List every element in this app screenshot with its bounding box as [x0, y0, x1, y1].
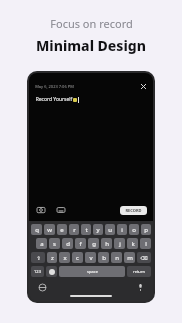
button[interactable]: a	[36, 238, 47, 249]
button[interactable]: t	[81, 224, 91, 235]
button[interactable]: x	[59, 252, 70, 263]
button[interactable]: s	[49, 238, 60, 249]
staticText: v	[89, 254, 93, 262]
button[interactable]: space	[59, 266, 125, 277]
button[interactable]: k	[127, 238, 138, 249]
staticText: r	[73, 226, 76, 234]
button[interactable]: 123	[31, 266, 44, 277]
button[interactable]: RECORD	[120, 206, 147, 215]
button[interactable]: z	[47, 252, 57, 263]
staticText: g	[92, 240, 96, 248]
staticText: h	[105, 240, 109, 248]
button[interactable]: n	[111, 252, 122, 263]
staticText: d	[66, 240, 70, 248]
staticText: u	[108, 226, 112, 234]
button[interactable]: Close	[139, 82, 147, 90]
button[interactable]: Attach media	[55, 204, 67, 216]
button[interactable]: p	[141, 224, 151, 235]
button[interactable]: j	[114, 238, 125, 249]
staticText: q	[35, 226, 39, 234]
button[interactable]: c	[72, 252, 83, 263]
button[interactable]: o	[129, 224, 139, 235]
staticText: x	[63, 254, 67, 262]
button[interactable]: q	[31, 224, 42, 235]
button[interactable]: f	[75, 238, 86, 249]
staticText: f	[79, 240, 82, 248]
staticText: c	[76, 254, 79, 262]
staticText: t	[85, 226, 88, 234]
button[interactable]: u	[105, 224, 115, 235]
staticText: m	[127, 254, 133, 262]
button[interactable]: l	[140, 238, 151, 249]
staticText: return	[133, 269, 145, 274]
staticText: e	[60, 226, 64, 234]
staticText: b	[102, 254, 106, 262]
staticText: Minimal Design	[36, 36, 146, 55]
button[interactable]: e	[57, 224, 67, 235]
button[interactable]: m	[124, 252, 135, 263]
button[interactable]: d	[62, 238, 73, 249]
staticText: Focus on record	[50, 16, 133, 31]
button[interactable]: Dictation	[135, 282, 145, 292]
staticText: y	[96, 226, 100, 234]
button[interactable]: Emoji	[46, 266, 57, 277]
staticText: i	[121, 226, 123, 234]
button[interactable]: h	[101, 238, 112, 249]
staticText: a	[40, 240, 44, 248]
staticText: n	[115, 254, 119, 262]
staticText: ⇧	[36, 255, 41, 261]
staticText: k	[131, 240, 135, 248]
staticText: RECORD	[125, 208, 142, 213]
button[interactable]: r	[69, 224, 79, 235]
button[interactable]: v	[85, 252, 96, 263]
staticText: z	[51, 254, 54, 262]
staticText: space	[87, 269, 98, 274]
staticText: o	[132, 226, 136, 234]
button[interactable]: ⇧	[31, 252, 45, 263]
button[interactable]: Camera	[35, 204, 47, 216]
button[interactable]: i	[117, 224, 127, 235]
staticText: p	[144, 226, 148, 234]
staticText: j	[119, 240, 121, 248]
staticText: ⌫	[140, 255, 148, 261]
button[interactable]: g	[88, 238, 99, 249]
staticText: l	[145, 240, 147, 248]
staticText: s	[53, 240, 56, 248]
button[interactable]: w	[44, 224, 55, 235]
button[interactable]: ⌫	[137, 252, 151, 263]
button[interactable]: b	[98, 252, 109, 263]
button[interactable]: y	[93, 224, 103, 235]
button[interactable]: return	[127, 266, 151, 277]
staticText: May 6, 2023 7:06 PM	[35, 84, 74, 89]
staticText: Record Yourself	[35, 96, 73, 103]
button[interactable]: Change keyboard	[37, 282, 47, 292]
staticText: 123	[34, 269, 41, 274]
staticText: w	[47, 226, 52, 234]
